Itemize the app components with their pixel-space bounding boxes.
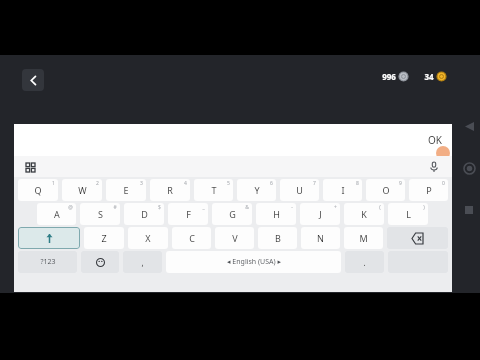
button[interactable]: Voice input [426, 159, 442, 175]
staticText: _ [202, 204, 205, 211]
staticText: ◂ English (USA) ▸ [227, 257, 281, 267]
button[interactable]: M [344, 227, 383, 249]
button[interactable]: 996 [382, 71, 408, 82]
staticText: D [141, 208, 148, 220]
button[interactable]: Q [18, 179, 58, 201]
staticText: , [141, 257, 144, 268]
button[interactable]: I [323, 179, 362, 201]
button[interactable]: , [123, 251, 162, 273]
button[interactable]: C [172, 227, 211, 249]
staticText: J [319, 208, 322, 220]
button[interactable]: B [258, 227, 297, 249]
staticText: U [296, 184, 303, 196]
staticText: ) [423, 204, 425, 211]
staticText: 2 [96, 180, 99, 187]
button[interactable]: E [106, 179, 146, 201]
button[interactable]: L [388, 203, 428, 225]
button[interactable]: ◂ English (USA) ▸ [166, 251, 341, 273]
button[interactable]: Emoji [81, 251, 119, 273]
staticText: G [229, 208, 236, 220]
staticText: $ [158, 204, 161, 211]
button[interactable]: W [62, 179, 102, 201]
staticText: # [113, 204, 117, 211]
staticText: H [273, 208, 280, 220]
staticText: S [98, 208, 103, 220]
staticText: 34 [424, 71, 434, 82]
button[interactable]: Y [237, 179, 276, 201]
button[interactable]: Home [461, 160, 477, 176]
staticText: Q [34, 184, 42, 196]
button[interactable]: S [80, 203, 120, 225]
staticText: 4 [184, 180, 187, 187]
staticText: N [317, 232, 324, 244]
staticText: I [341, 184, 345, 196]
button[interactable]: J [300, 203, 340, 225]
staticText: K [361, 208, 367, 220]
staticText: P [426, 184, 432, 196]
button[interactable]: Backspace [387, 227, 448, 249]
button[interactable]: N [301, 227, 340, 249]
staticText: OK [428, 133, 442, 147]
button[interactable]: F [168, 203, 208, 225]
staticText: V [232, 232, 238, 244]
staticText: 7 [313, 180, 316, 187]
staticText: W [78, 184, 87, 196]
staticText: R [167, 184, 173, 196]
staticText: . [363, 257, 366, 268]
staticText: + [334, 204, 337, 211]
button[interactable]: OK [428, 133, 442, 147]
button[interactable]: Z [84, 227, 124, 249]
button[interactable]: Recents [461, 202, 477, 218]
button[interactable]: 34 [424, 71, 446, 82]
staticText: A [54, 208, 60, 220]
staticText: 9 [399, 180, 402, 187]
button[interactable]: A [37, 203, 76, 225]
staticText: O [382, 184, 390, 196]
staticText: B [275, 232, 281, 244]
button[interactable]: D [124, 203, 164, 225]
staticText: 8 [356, 180, 359, 187]
button[interactable]: T [194, 179, 233, 201]
button[interactable]: Back [22, 69, 44, 91]
button[interactable]: G [212, 203, 252, 225]
button[interactable]: X [128, 227, 168, 249]
staticText: 0 [442, 180, 445, 187]
staticText: - [291, 204, 293, 211]
button[interactable]: . [345, 251, 384, 273]
button[interactable]: Back [461, 118, 477, 134]
staticText: ( [379, 204, 381, 211]
staticText: X [145, 232, 151, 244]
staticText: T [211, 184, 217, 196]
staticText: 6 [270, 180, 273, 187]
staticText: E [123, 184, 129, 196]
staticText: F [186, 208, 191, 220]
button[interactable]: O [366, 179, 405, 201]
staticText: 5 [227, 180, 230, 187]
button[interactable]: R [150, 179, 190, 201]
staticText: & [245, 204, 249, 211]
staticText: M [359, 232, 368, 244]
button[interactable]: Shift [18, 227, 80, 249]
button[interactable]: K [344, 203, 384, 225]
staticText: 3 [140, 180, 143, 187]
staticText: Y [254, 184, 260, 196]
button[interactable]: Clipboard [22, 159, 38, 175]
button[interactable]: H [256, 203, 296, 225]
staticText: L [406, 208, 411, 220]
staticText: ?123 [40, 257, 56, 267]
staticText: @ [68, 204, 73, 211]
button[interactable]: ?123 [18, 251, 77, 273]
staticText: C [189, 232, 195, 244]
button[interactable]: V [215, 227, 254, 249]
button[interactable]: P [409, 179, 448, 201]
button[interactable]: U [280, 179, 319, 201]
staticText: Z [101, 232, 107, 244]
staticText: 1 [52, 180, 55, 187]
staticText: 996 [382, 71, 396, 82]
